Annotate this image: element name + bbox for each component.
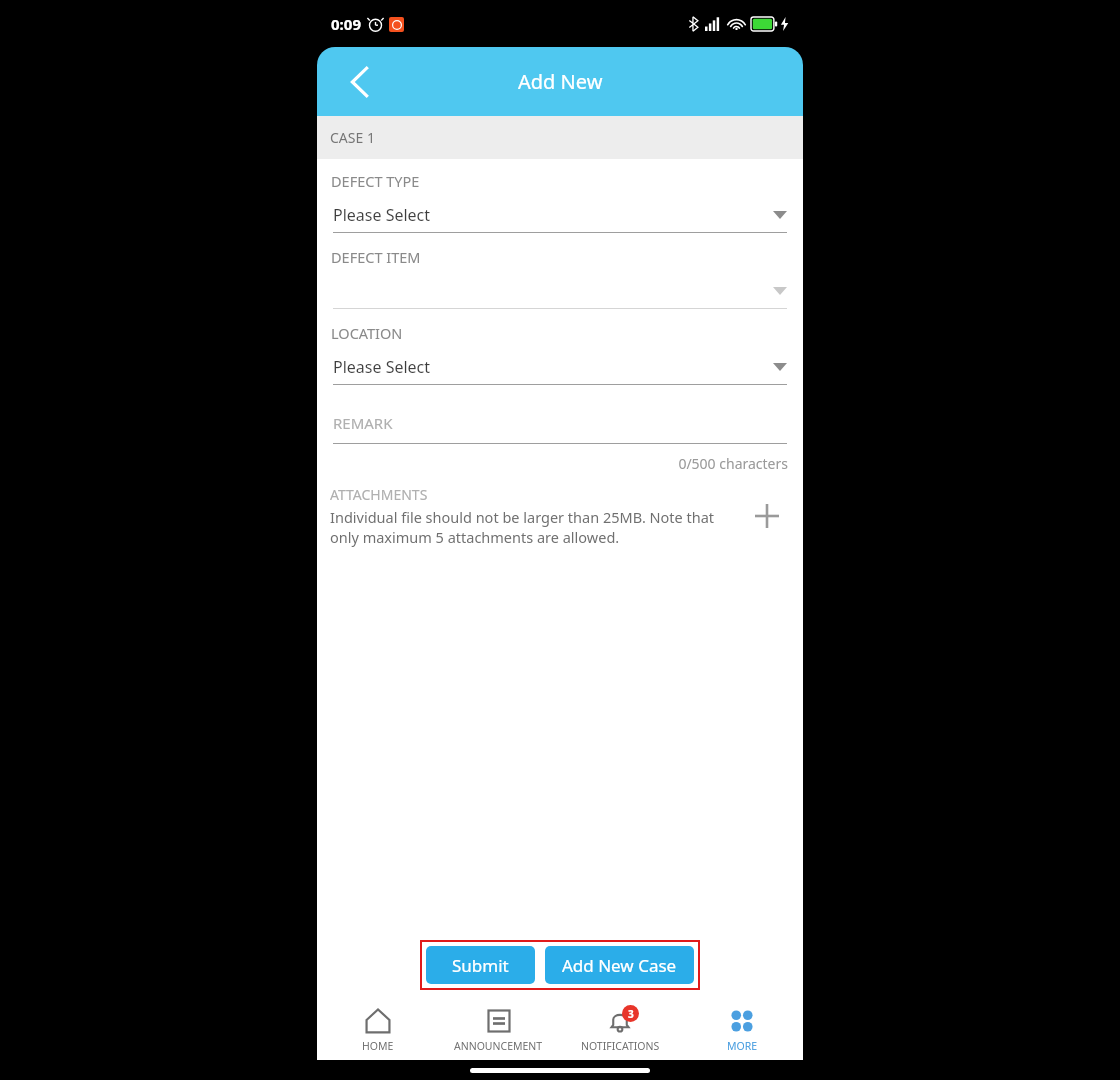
staticText: HOME xyxy=(362,1039,394,1053)
button[interactable]: Add attachment xyxy=(744,493,790,539)
staticText: 3 xyxy=(628,1007,634,1021)
staticText: ATTACHMENTS xyxy=(330,485,428,504)
staticText: Add New Case xyxy=(562,954,677,977)
button[interactable]: Submit xyxy=(426,946,535,984)
staticText: Add New xyxy=(518,68,603,95)
button[interactable]: MORE xyxy=(681,998,803,1060)
staticText: Individual file should not be larger tha… xyxy=(330,507,744,547)
staticText: ANNOUNCEMENT xyxy=(454,1039,543,1053)
staticText: LOCATION xyxy=(331,323,403,343)
button[interactable]: ANNOUNCEMENT xyxy=(438,998,559,1060)
staticText: Please Select xyxy=(333,204,431,226)
staticText: CASE 1 xyxy=(330,128,375,147)
staticText: REMARK xyxy=(333,413,393,433)
staticText: DEFECT ITEM xyxy=(331,247,421,267)
button[interactable]: HOME xyxy=(317,998,438,1060)
button[interactable]: REMARK xyxy=(333,413,787,444)
button[interactable]: Back xyxy=(339,62,379,102)
button[interactable] xyxy=(333,279,787,309)
button[interactable]: Please Select xyxy=(333,203,787,233)
staticText: MORE xyxy=(727,1039,758,1053)
staticText: DEFECT TYPE xyxy=(331,171,420,191)
staticText: 0/500 characters xyxy=(330,454,788,473)
staticText: Please Select xyxy=(333,356,431,378)
staticText: NOTIFICATIONS xyxy=(581,1039,660,1053)
button[interactable]: Add New Case xyxy=(545,946,694,984)
staticText: 0:09 xyxy=(331,14,361,34)
button[interactable]: 3 xyxy=(559,998,681,1060)
button[interactable]: CASE 1 xyxy=(317,116,803,159)
button[interactable]: Please Select xyxy=(333,355,787,385)
staticText: Submit xyxy=(452,954,509,977)
